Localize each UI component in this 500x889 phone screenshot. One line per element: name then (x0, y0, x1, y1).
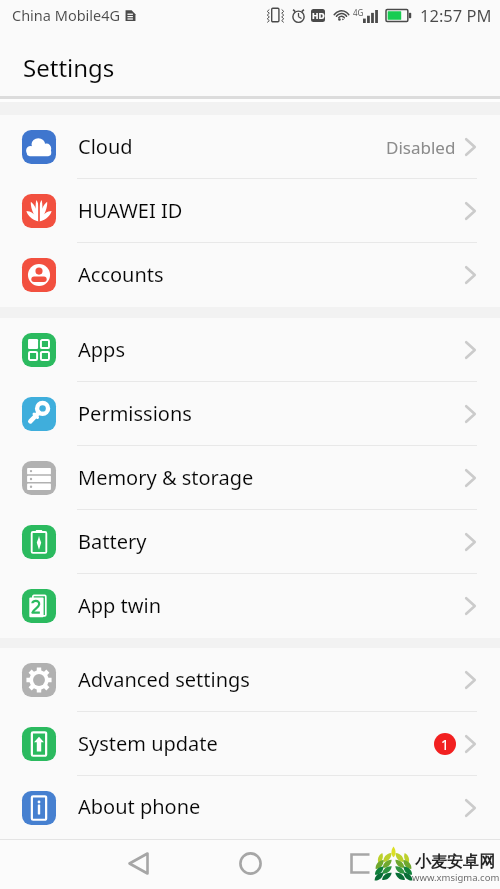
button[interactable]: Recent apps (338, 841, 382, 885)
button[interactable]: Battery (0, 510, 500, 574)
staticText: Permissions (78, 400, 192, 427)
staticText: Disabled (386, 136, 456, 159)
button[interactable]: Accounts (0, 243, 500, 307)
button[interactable]: Permissions (0, 382, 500, 446)
staticText: HUAWEI ID (78, 197, 183, 224)
staticText: System update (78, 730, 218, 757)
staticText: Battery (78, 528, 147, 555)
button[interactable]: Advanced settings (0, 648, 500, 712)
button[interactable]: About phone (0, 776, 500, 839)
staticText: 小麦安卓网 (415, 852, 495, 872)
staticText: HD (312, 10, 325, 22)
staticText: 12:57 PM (420, 4, 492, 26)
staticText: About phone (78, 793, 201, 820)
staticText: App twin (78, 592, 162, 619)
staticText: Memory & storage (78, 464, 254, 491)
staticText: www.xmsigma.com (412, 871, 500, 884)
button[interactable]: System update (0, 712, 500, 776)
button[interactable]: Apps (0, 318, 500, 382)
staticText: 1 (441, 735, 450, 754)
button[interactable]: HUAWEI ID (0, 179, 500, 243)
button[interactable]: Back (116, 841, 160, 885)
button[interactable]: Home (228, 841, 272, 885)
button[interactable]: Cloud (0, 115, 500, 179)
staticText: China Mobile4G (12, 5, 121, 25)
staticText: Cloud (78, 133, 133, 160)
staticText: 4G (353, 7, 364, 18)
staticText: Apps (78, 336, 125, 363)
button[interactable]: Memory & storage (0, 446, 500, 510)
staticText: Settings (23, 51, 115, 84)
button[interactable]: App twin (0, 574, 500, 638)
staticText: Accounts (78, 261, 164, 288)
staticText: Advanced settings (78, 666, 250, 693)
